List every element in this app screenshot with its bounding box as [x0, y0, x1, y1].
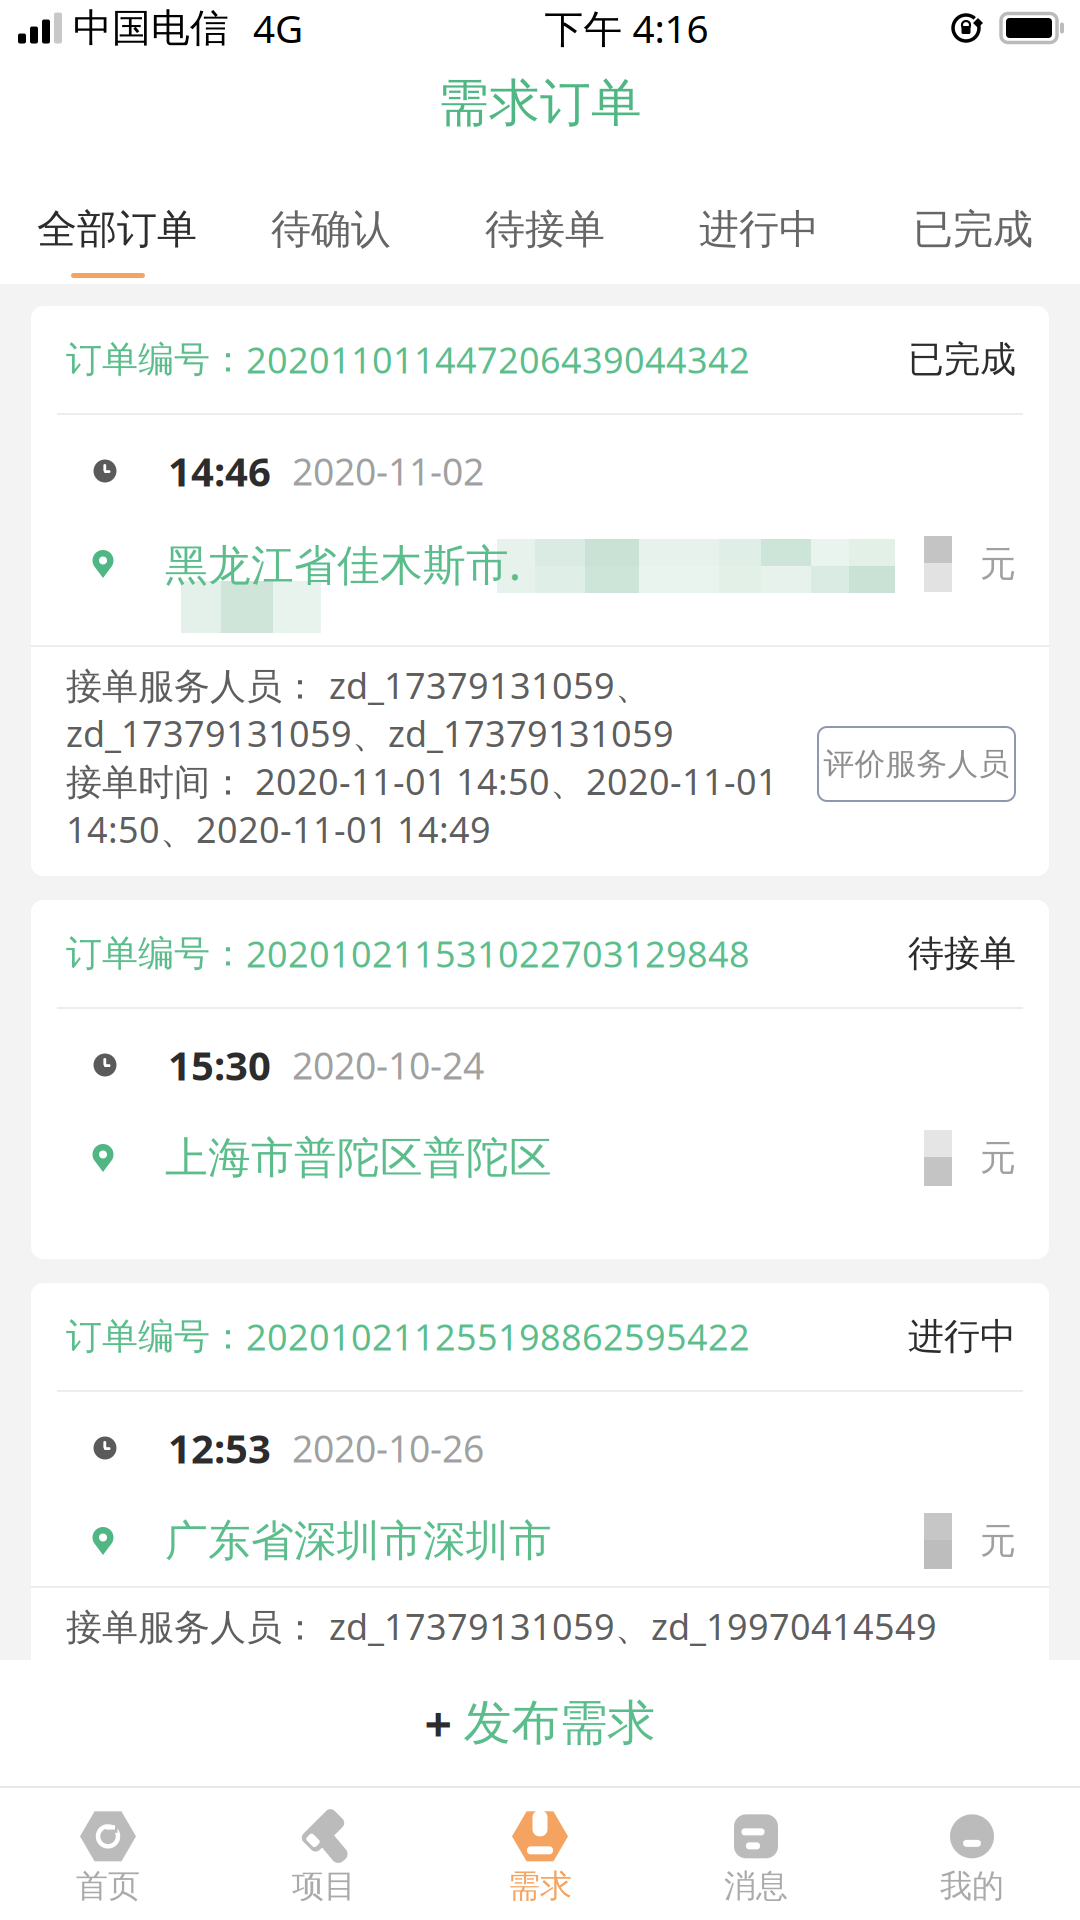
staticText: 接单服务人员： zd_17379131059、: [66, 661, 651, 709]
staticText: 下午 4:16: [544, 2, 708, 54]
staticText: 202011011447206439044342: [246, 336, 750, 383]
staticText: 元: [980, 1519, 1016, 1563]
staticText: 订单编号：: [66, 931, 246, 976]
staticText: 已完成: [908, 337, 1016, 382]
staticText: 4G: [253, 2, 303, 54]
button[interactable]: 需求: [432, 1810, 648, 1906]
button[interactable]: 已完成: [866, 205, 1080, 278]
staticText: 14:50、2020-11-01 14:49: [66, 805, 491, 853]
staticText: 评价服务人员: [823, 745, 1009, 783]
staticText: 待确认: [271, 205, 391, 254]
staticText: 2020-11-02: [292, 446, 484, 496]
staticText: 订单编号：: [66, 337, 246, 382]
staticText: 12:53: [168, 1421, 271, 1474]
staticText: 2020-10-26: [292, 1423, 484, 1473]
button[interactable]: 待确认: [224, 205, 438, 278]
button[interactable]: 评价服务人员: [818, 727, 1015, 801]
staticText: 待接单: [485, 205, 605, 254]
staticText: 15:30: [168, 1038, 271, 1091]
button[interactable]: 进行中: [652, 205, 866, 278]
staticText: 接单时间： 2020-11-01 14:50、2020-11-01: [66, 757, 778, 805]
button[interactable]: 我的: [864, 1810, 1080, 1906]
staticText: 项目: [292, 1866, 356, 1906]
staticText: 黑龙江省佳木斯市.: [165, 536, 521, 592]
staticText: 待接单: [908, 931, 1016, 976]
staticText: 已完成: [913, 205, 1033, 254]
staticText: 2020-10-24: [292, 1040, 484, 1090]
staticText: 广东省深圳市深圳市: [165, 1515, 552, 1567]
button[interactable]: 首页: [0, 1810, 216, 1906]
button[interactable]: 待接单: [438, 205, 652, 278]
staticText: 订单编号：: [66, 1314, 246, 1359]
staticText: zd_17379131059、zd_17379131059: [66, 709, 674, 757]
staticText: 需求订单: [438, 72, 642, 134]
staticText: 需求: [508, 1866, 572, 1906]
staticText: 202010211531022703129848: [246, 930, 750, 977]
staticText: 进行中: [699, 205, 819, 254]
staticText: 进行中: [908, 1314, 1016, 1359]
staticText: 元: [980, 542, 1016, 586]
button[interactable]: 全部订单: [10, 205, 224, 278]
staticText: 上海市普陀区普陀区: [165, 1132, 552, 1184]
staticText: 中国电信: [73, 4, 229, 52]
staticText: 202010211255198862595422: [246, 1313, 750, 1360]
staticText: 我的: [940, 1866, 1004, 1906]
button[interactable]: 消息: [648, 1810, 864, 1906]
staticText: 消息: [724, 1866, 788, 1906]
staticText: 元: [980, 1136, 1016, 1180]
staticText: +: [424, 1691, 451, 1755]
staticText: 14:46: [168, 444, 271, 497]
staticText: 首页: [76, 1866, 140, 1906]
staticText: 接单服务人员： zd_17379131059、zd_19970414549: [66, 1602, 937, 1650]
button[interactable]: 项目: [216, 1810, 432, 1906]
staticText: 发布需求: [463, 1693, 655, 1752]
button[interactable]: +: [0, 1660, 1080, 1786]
staticText: 全部订单: [37, 205, 197, 254]
